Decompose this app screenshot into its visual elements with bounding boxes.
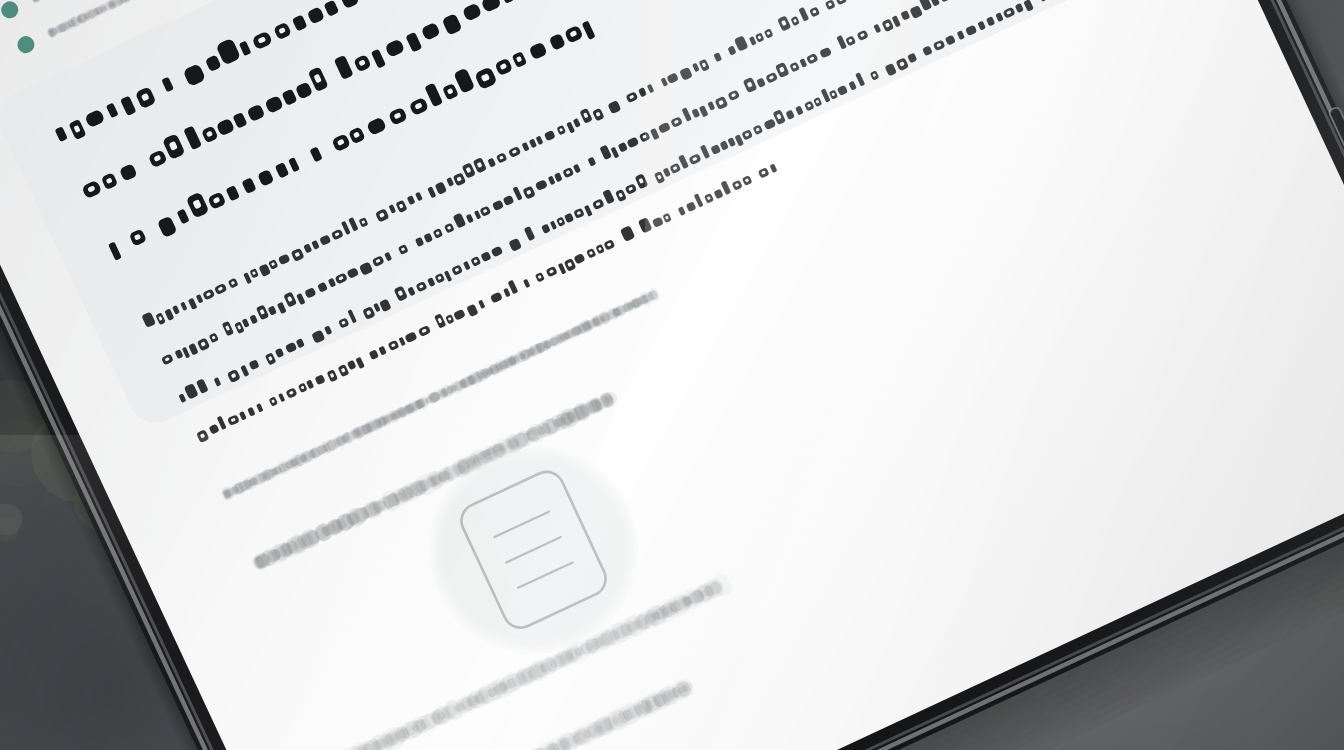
other: Phone screen showing an article bbox=[0, 0, 1344, 750]
button[interactable]: Phone screen showing an article bbox=[0, 0, 1344, 750]
